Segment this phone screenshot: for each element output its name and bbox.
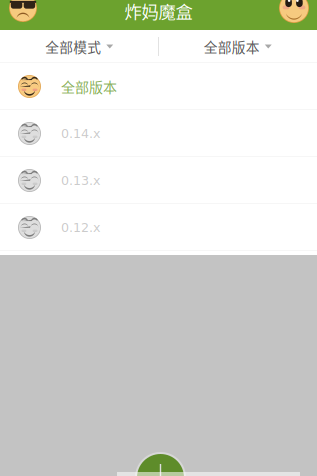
- staticText: 0.12.x: [61, 220, 100, 235]
- button[interactable]: 全部版本: [0, 63, 317, 110]
- button[interactable]: 全部模式: [0, 30, 158, 63]
- button[interactable]: Messages: [277, 0, 311, 30]
- button[interactable]: 0.13.x: [0, 157, 317, 204]
- staticText: 0.14.x: [61, 126, 100, 141]
- staticText: 全部模式: [45, 37, 101, 56]
- button[interactable]: Account: [6, 0, 40, 30]
- button[interactable]: 0.14.x: [0, 110, 317, 157]
- staticText: 炸妈魔盒: [124, 0, 192, 24]
- button[interactable]: Add: [135, 452, 186, 476]
- staticText: 全部版本: [204, 37, 260, 56]
- staticText: 全部版本: [61, 76, 117, 97]
- button[interactable]: 全部版本: [158, 30, 317, 63]
- staticText: 0.13.x: [61, 173, 100, 188]
- button[interactable]: 0.12.x: [0, 204, 317, 251]
